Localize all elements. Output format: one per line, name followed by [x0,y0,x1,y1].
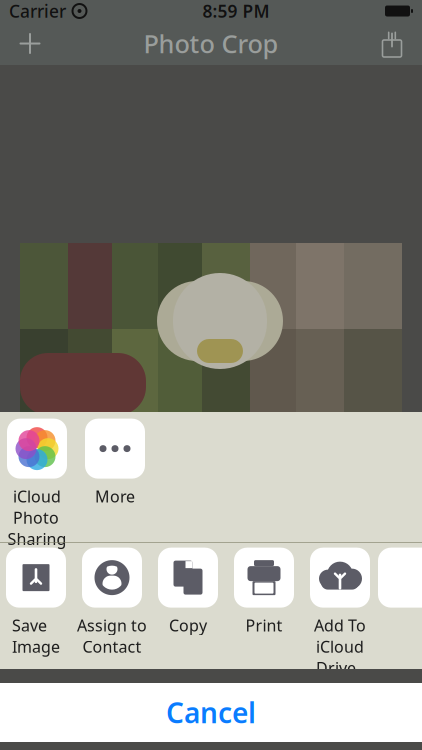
staticText: Contact [82,636,141,657]
button[interactable]: Copy [150,548,226,660]
button[interactable]: More Actions [378,548,422,608]
staticText: Cancel [166,694,256,731]
button[interactable]: Share [370,22,414,65]
button[interactable]: Cancel [0,683,422,742]
button[interactable]: Save Image [0,548,74,660]
staticText: Sharing [7,528,66,549]
staticText: Add To [314,615,366,636]
staticText: Print [245,615,282,636]
button[interactable]: Add To [302,548,378,678]
button[interactable]: Add Photo [8,22,52,65]
button[interactable]: More [76,419,154,535]
button[interactable]: Print [226,548,302,660]
button[interactable]: iCloud Photo [0,419,76,549]
button[interactable]: Assign to [74,548,150,660]
staticText: Assign to [77,615,147,636]
staticText: iCloud Photo [13,486,61,528]
staticText: Carrier [9,0,66,22]
staticText: Photo Crop [143,27,278,60]
staticText: More [95,486,135,507]
staticText: Save Image [12,615,60,657]
staticText: iCloud Drive [316,636,364,678]
staticText: Copy [169,615,207,636]
staticText: 8:59 PM [202,0,269,22]
